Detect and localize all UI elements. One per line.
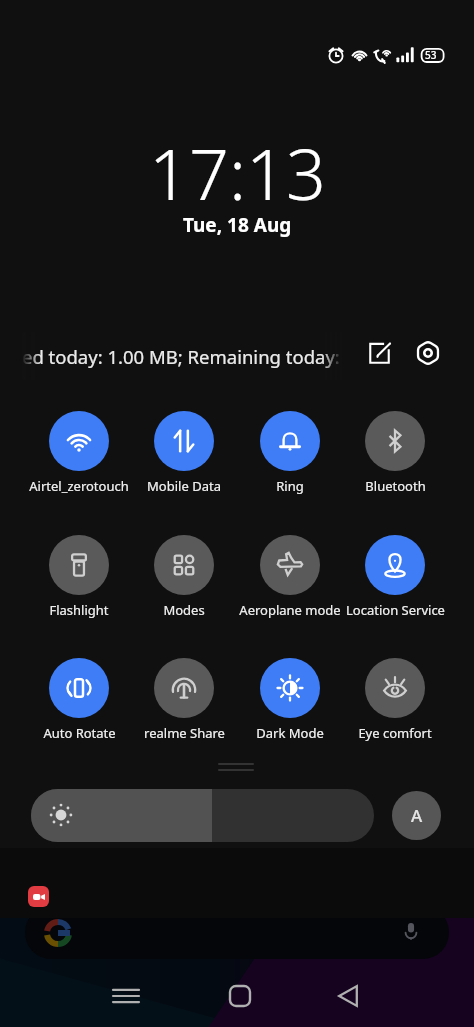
staticText: 17:13 bbox=[149, 125, 326, 220]
button[interactable]: Eye comfort bbox=[343, 658, 447, 742]
button[interactable]: Edit bbox=[358, 332, 400, 374]
button[interactable]: Recents bbox=[96, 966, 156, 1026]
button[interactable]: Auto Rotate bbox=[27, 658, 131, 742]
staticText: Tue, 18 Aug bbox=[183, 212, 292, 238]
staticText: Dark Mode bbox=[256, 724, 324, 742]
button[interactable]: Search bbox=[25, 906, 449, 959]
staticText: Flashlight bbox=[49, 601, 109, 619]
button[interactable]: Airtel_zerotouch bbox=[27, 411, 131, 495]
button[interactable]: realme Share bbox=[132, 658, 236, 742]
staticText: Bluetooth bbox=[365, 477, 426, 495]
button[interactable]: Brightness bbox=[31, 789, 374, 842]
button[interactable]: Auto brightness bbox=[392, 791, 441, 840]
staticText: Eye comfort bbox=[358, 724, 432, 742]
staticText: A bbox=[411, 804, 423, 827]
staticText: 53 bbox=[425, 48, 437, 62]
staticText: ed today: 1.00 MB; Remaining today: bbox=[22, 344, 340, 369]
staticText: Aeroplane mode bbox=[239, 601, 341, 619]
button[interactable]: Ring bbox=[238, 411, 342, 495]
button[interactable]: Flashlight bbox=[27, 535, 131, 619]
button[interactable]: Settings bbox=[407, 332, 449, 374]
button[interactable]: Bluetooth bbox=[343, 411, 447, 495]
staticText: realme Share bbox=[144, 724, 225, 742]
staticText: Location Service bbox=[346, 601, 445, 619]
staticText: Ring bbox=[276, 477, 304, 495]
button[interactable]: Back bbox=[318, 966, 378, 1026]
staticText: Auto Rotate bbox=[43, 724, 116, 742]
button[interactable]: Mobile Data bbox=[132, 411, 236, 495]
staticText: Airtel_zerotouch bbox=[29, 477, 129, 495]
button[interactable]: Dark Mode bbox=[238, 658, 342, 742]
button[interactable]: Screen recorder bbox=[28, 886, 49, 907]
button[interactable]: Modes bbox=[132, 535, 236, 619]
staticText: Mobile Data bbox=[147, 477, 221, 495]
button[interactable]: Aeroplane mode bbox=[238, 535, 342, 619]
staticText: Modes bbox=[163, 601, 205, 619]
button[interactable]: Home bbox=[210, 966, 270, 1026]
button[interactable]: Location Service bbox=[343, 535, 447, 619]
